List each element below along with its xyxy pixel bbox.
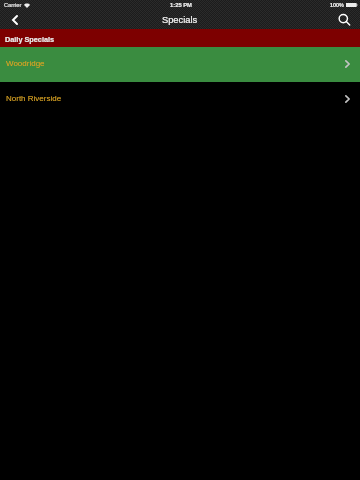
staticText: 1:25 PM [170, 2, 192, 8]
button[interactable]: North Riverside [0, 82, 360, 117]
staticText: Woodridge [6, 59, 45, 68]
staticText: 100% [330, 2, 344, 8]
staticText: Carrier [4, 2, 22, 8]
button[interactable]: Woodridge [0, 47, 360, 82]
button[interactable]: Search [332, 10, 354, 29]
staticText: Specials [162, 15, 198, 25]
staticText: North Riverside [6, 94, 62, 103]
staticText: Daily Specials [5, 35, 55, 43]
button[interactable]: Back [4, 10, 26, 29]
